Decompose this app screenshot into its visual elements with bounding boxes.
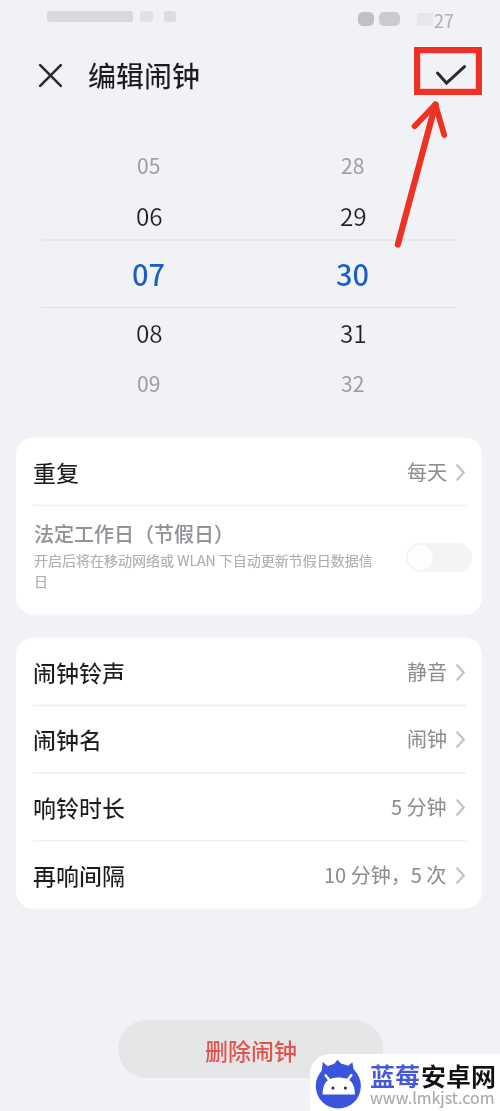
staticText: 响铃时长 [33,790,125,823]
staticText: 32 [341,368,365,398]
staticText: 31 [340,315,367,350]
staticText: 07 [132,252,166,294]
staticText: 日 [34,571,48,591]
button[interactable]: 32 [313,361,393,405]
staticText: 每天 [407,457,447,486]
staticText: 删除闹钟 [205,1033,297,1066]
button[interactable]: 闹钟名 [16,705,482,773]
staticText: 闹钟 [407,724,447,753]
button[interactable]: 09 [109,361,189,405]
staticText: 30 [336,252,370,294]
staticText: 静音 [407,657,447,686]
staticText: www.lmkjst.com [370,1085,495,1108]
staticText: 编辑闹钟 [88,55,201,96]
button[interactable]: 删除闹钟 [118,1020,383,1078]
button[interactable]: Skip holidays [16,505,482,614]
button[interactable]: 响铃时长 [16,773,482,841]
staticText: 05 [137,150,161,180]
staticText: 10 分钟，5 次 [324,860,447,889]
button[interactable]: 29 [313,193,393,237]
button[interactable]: 05 [109,143,189,187]
staticText: 蓝莓 [370,1057,421,1093]
button[interactable]: 31 [313,310,393,354]
button[interactable]: 06 [109,193,189,237]
staticText: 09 [137,368,161,398]
staticText: 再响间隔 [33,858,125,891]
staticText: 开启后将在移动网络或 WLAN 下自动更新节假日数据信 [34,550,373,570]
button[interactable]: 闹钟铃声 [16,638,482,706]
button[interactable]: Toggle skip holidays [406,543,472,572]
staticText: 27 [434,7,454,33]
button[interactable]: Close [28,53,72,97]
staticText: 闹钟名 [33,722,102,755]
button[interactable]: 08 [109,310,189,354]
staticText: 06 [136,198,163,233]
button[interactable]: 再响间隔 [16,841,482,909]
button[interactable]: 重复 [16,438,482,506]
button[interactable]: Confirm [414,47,482,95]
staticText: 法定工作日（节假日） [34,519,234,548]
staticText: 重复 [33,455,79,488]
staticText: 29 [340,198,367,233]
staticText: 安卓网 [421,1057,497,1093]
button[interactable]: 28 [313,143,393,187]
button[interactable]: 07 [109,251,189,295]
staticText: 08 [136,315,163,350]
staticText: 5 分钟 [391,792,447,821]
staticText: 28 [341,150,365,180]
button[interactable]: 30 [313,251,393,295]
staticText: 闹钟铃声 [33,655,125,688]
